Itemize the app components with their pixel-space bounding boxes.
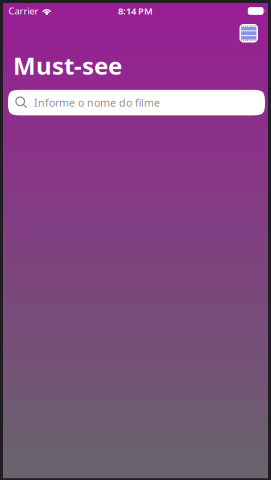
button[interactable]: Movies xyxy=(239,24,258,42)
staticText: 8:14 PM xyxy=(118,5,153,17)
staticText: Must-see xyxy=(13,49,122,81)
staticText: Carrier xyxy=(8,5,38,17)
staticText: Informe o nome do filme xyxy=(34,95,160,110)
button[interactable]: Informe o nome do filme xyxy=(8,90,265,115)
